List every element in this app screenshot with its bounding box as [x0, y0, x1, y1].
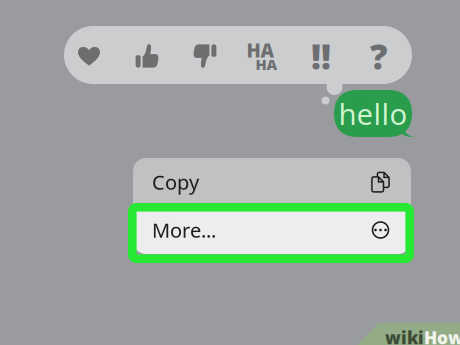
button[interactable]: Like — [118, 27, 176, 85]
button[interactable]: More... — [133, 206, 411, 254]
button[interactable]: Question mark — [350, 27, 408, 85]
button[interactable]: Exclamation — [292, 27, 350, 85]
staticText: How — [424, 326, 460, 345]
button[interactable]: Dislike — [176, 27, 234, 85]
button[interactable]: Copy — [133, 158, 411, 206]
staticText: hello — [338, 94, 407, 133]
staticText: HA — [255, 55, 277, 74]
staticText: Copy — [152, 169, 199, 195]
staticText: !! — [311, 33, 331, 79]
staticText: HA — [246, 38, 274, 63]
staticText: wiki — [385, 326, 424, 345]
button[interactable]: Love — [60, 27, 118, 85]
staticText: ? — [370, 33, 388, 79]
staticText: More... — [152, 217, 216, 243]
button[interactable]: Haha — [234, 27, 292, 85]
